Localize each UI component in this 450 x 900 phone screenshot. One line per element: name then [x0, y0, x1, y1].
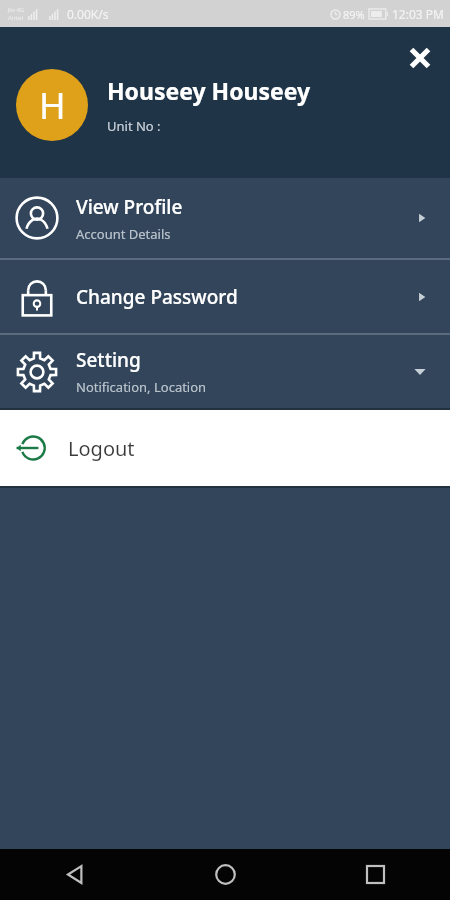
staticText: Account Details — [76, 225, 171, 243]
button[interactable]: Change Password — [0, 260, 450, 333]
staticText: Airtel — [8, 14, 23, 22]
staticText: 12:03 PM — [392, 6, 444, 22]
staticText: View Profile — [76, 194, 183, 220]
button[interactable]: Home — [150, 849, 300, 900]
button[interactable]: Close — [397, 35, 443, 81]
button[interactable]: Setting — [0, 335, 450, 408]
staticText: Houseey Houseey — [107, 75, 311, 106]
button[interactable]: View Profile — [0, 178, 450, 258]
button[interactable]: Logout — [0, 410, 450, 486]
staticText: Jio 4G — [8, 6, 25, 14]
staticText: 0.00K/s — [67, 6, 109, 22]
staticText: Logout — [68, 435, 135, 462]
staticText: H — [39, 81, 66, 130]
button[interactable]: Recent apps — [300, 849, 450, 900]
staticText: Change Password — [76, 284, 238, 310]
staticText: Notification, Location — [76, 378, 207, 396]
staticText: Unit No : — [107, 117, 161, 135]
button[interactable]: Back — [0, 849, 150, 900]
staticText: Setting — [76, 347, 141, 373]
staticText: 89% — [343, 7, 365, 22]
